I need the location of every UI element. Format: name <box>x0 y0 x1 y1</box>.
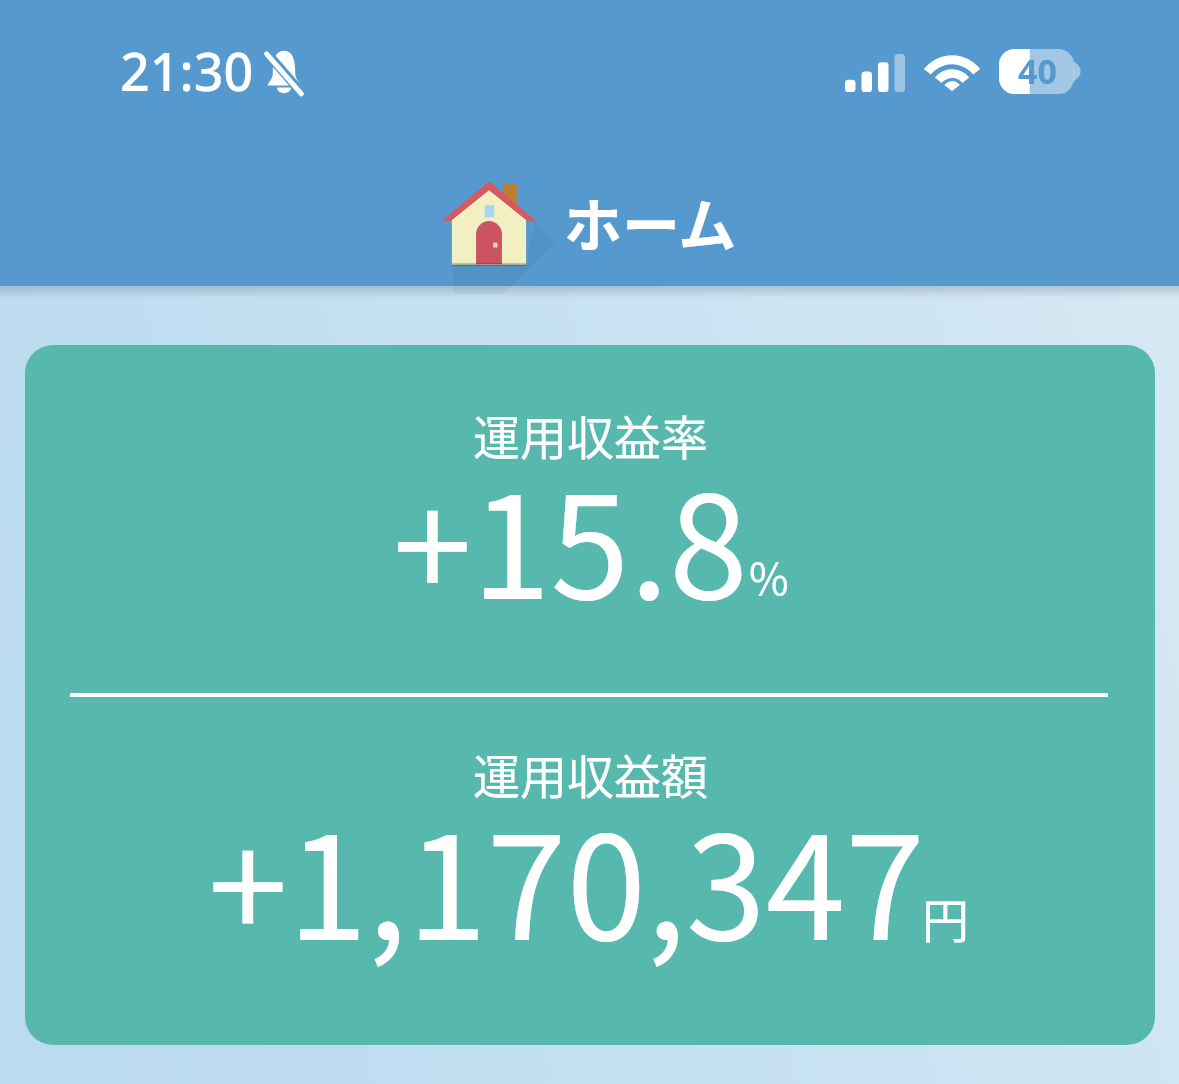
staticText: % <box>749 545 789 607</box>
staticText: 運用収益額 <box>473 739 708 807</box>
staticText: 円 <box>922 883 969 951</box>
staticText: 21:30 <box>120 35 254 106</box>
staticText: 40 <box>1018 48 1057 93</box>
other: Battery 40 percent <box>999 49 1083 94</box>
button[interactable]: 運用収益率 <box>25 345 1155 1045</box>
button[interactable]: Home <box>430 165 737 283</box>
staticText: ホーム <box>564 180 737 264</box>
other: Signal strength <box>845 54 905 92</box>
other: Notifications muted <box>262 47 306 95</box>
staticText: 運用収益率 <box>473 400 708 468</box>
staticText: +15.8 <box>393 434 748 640</box>
other: Wi-Fi <box>926 53 978 91</box>
staticText: +1,170,347 <box>208 774 925 982</box>
other: Home <box>442 176 536 272</box>
